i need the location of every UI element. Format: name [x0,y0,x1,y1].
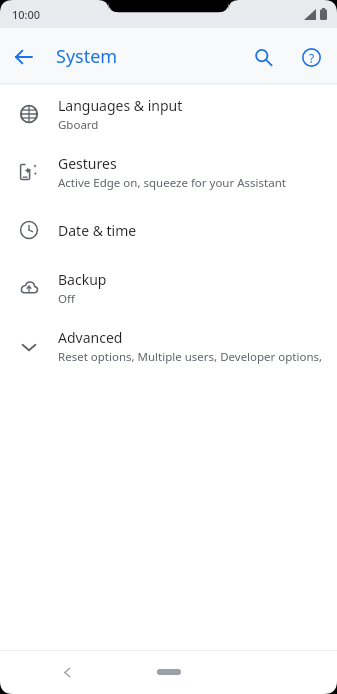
staticText: Languages & input [58,96,183,115]
staticText: ? [309,50,315,66]
staticText: System [56,44,118,69]
button[interactable]: Back [52,657,82,687]
staticText: Gboard [58,117,99,133]
button[interactable]: Backup [0,259,337,317]
staticText: Reset options, Multiple users, Developer… [58,349,325,365]
staticText: Gestures [58,154,117,173]
button[interactable]: Search [239,33,287,81]
button[interactable]: Home [149,662,189,682]
staticText: Off [58,291,75,307]
button[interactable]: Languages & input [0,85,337,143]
button[interactable]: Back [0,33,48,81]
button[interactable]: Advanced [0,317,337,375]
button[interactable]: Help [287,33,335,81]
staticText: Backup [58,270,107,289]
staticText: Advanced [58,328,123,347]
staticText: Date & time [58,221,137,240]
button[interactable]: Gestures [0,143,337,201]
staticText: Active Edge on, squeeze for your Assista… [58,175,286,191]
staticText: 10:00 [12,7,41,22]
button[interactable]: Date & time [0,201,337,259]
